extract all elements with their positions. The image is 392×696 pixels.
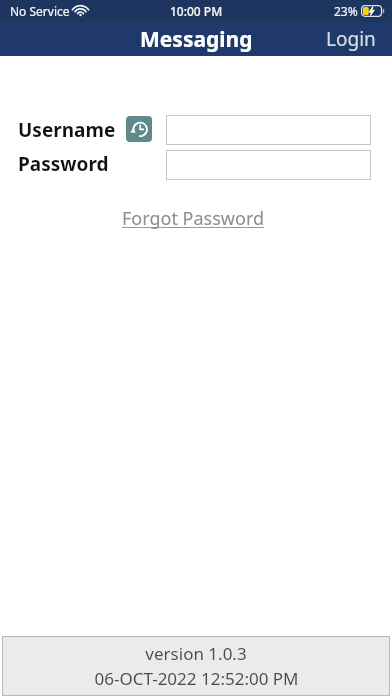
- staticText: 10:00 PM: [170, 3, 223, 19]
- button[interactable]: Login: [310, 22, 392, 56]
- staticText: No Service: [10, 3, 70, 19]
- staticText: Messaging: [140, 25, 253, 54]
- staticText: Forgot Password: [122, 206, 265, 231]
- button[interactable]: Username history: [126, 116, 152, 142]
- staticText: version 1.0.3: [145, 642, 247, 665]
- button[interactable]: Forgot Password: [118, 204, 269, 233]
- staticText: Username: [18, 117, 116, 143]
- staticText: 06-OCT-2022 12:52:00 PM: [94, 667, 299, 690]
- button[interactable]: Username input: [166, 115, 371, 145]
- staticText: 23%: [334, 3, 358, 19]
- staticText: Password: [18, 151, 109, 177]
- staticText: Login: [326, 26, 376, 52]
- button[interactable]: Password input: [166, 150, 371, 180]
